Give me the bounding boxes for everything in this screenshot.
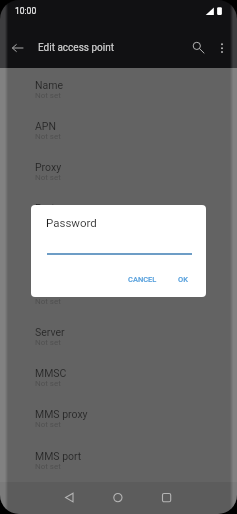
button[interactable]: Proxy xyxy=(0,161,237,202)
staticText: Not set xyxy=(35,173,61,182)
staticText: MMS port xyxy=(35,450,82,462)
staticText: OK xyxy=(178,275,188,284)
button[interactable]: OK xyxy=(178,275,188,284)
staticText: Not set xyxy=(35,297,61,306)
staticText: Not set xyxy=(35,462,61,471)
staticText: Not set xyxy=(35,420,61,429)
button[interactable]: Back xyxy=(57,482,82,514)
staticText: CANCEL xyxy=(128,275,157,284)
button[interactable]: Name xyxy=(0,79,237,120)
staticText: Name xyxy=(35,79,63,91)
button[interactable]: Navigate up xyxy=(6,30,32,62)
button[interactable]: APN xyxy=(0,120,237,161)
staticText: Not set xyxy=(35,379,61,388)
button[interactable]: Port xyxy=(0,202,237,243)
staticText: Not set xyxy=(35,91,61,100)
staticText: 10:00 xyxy=(15,6,37,16)
button[interactable]: MMSC xyxy=(0,367,237,408)
button[interactable]: Search xyxy=(183,30,211,62)
staticText: Not set xyxy=(35,214,61,223)
staticText: Password xyxy=(46,216,97,229)
button[interactable]: More options xyxy=(211,30,233,62)
button[interactable]: CANCEL xyxy=(128,275,157,284)
button[interactable]: Server xyxy=(0,326,237,367)
button[interactable]: Home xyxy=(106,482,131,514)
staticText: Port xyxy=(35,202,55,214)
button[interactable]: MMS proxy xyxy=(0,408,237,449)
staticText: APN xyxy=(35,120,56,132)
button[interactable]: Username xyxy=(0,244,237,285)
staticText: Proxy xyxy=(35,161,62,173)
staticText: Server xyxy=(35,326,65,338)
staticText: Not set xyxy=(35,338,61,347)
staticText: MMS proxy xyxy=(35,408,88,420)
staticText: Edit access point xyxy=(38,42,114,54)
staticText: Username xyxy=(35,244,83,256)
button[interactable]: MMS port xyxy=(0,450,237,491)
staticText: Not set xyxy=(35,132,61,141)
button[interactable]: Password xyxy=(0,285,237,326)
button[interactable]: Recent apps xyxy=(154,482,179,514)
staticText: MMSC xyxy=(35,367,67,379)
